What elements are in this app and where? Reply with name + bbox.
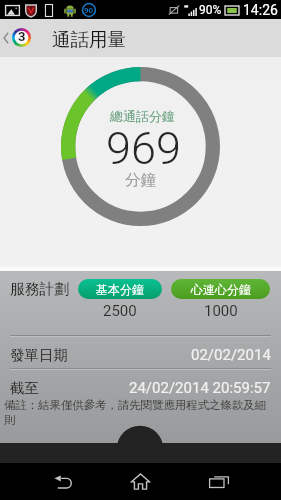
button[interactable]: 基本分鐘 — [78, 279, 162, 299]
staticText: 基本分鐘 — [96, 282, 144, 297]
staticText: 心連心分鐘 — [191, 282, 251, 297]
staticText: 截至 — [10, 379, 39, 397]
staticText: 02/02/2014 — [191, 346, 271, 364]
button[interactable]: 截至 — [0, 372, 281, 404]
staticText: 90 — [84, 6, 94, 15]
staticText: 分鐘 — [125, 170, 156, 190]
staticText: 969 — [106, 122, 181, 175]
button[interactable]: 發單日期 — [0, 339, 281, 371]
staticText: 總通話分鐘 — [110, 108, 175, 124]
button[interactable]: Recent apps — [196, 463, 241, 500]
staticText: 90% — [199, 3, 222, 17]
staticText: 服務計劃 — [10, 280, 70, 299]
button[interactable]: 心連心分鐘 — [171, 279, 270, 299]
staticText: 14:26 — [243, 2, 278, 18]
staticText: 2500 — [103, 302, 137, 319]
staticText: 備註：結果僅供參考，請先閱覽應用程式之條款及細則 — [4, 398, 266, 427]
button[interactable]: Home — [118, 463, 163, 500]
staticText: 發單日期 — [10, 346, 68, 364]
staticText: 24/02/2014 20:59:57 — [129, 379, 271, 397]
button[interactable]: Back — [41, 463, 86, 500]
button[interactable]: Back — [0, 19, 12, 57]
staticText: 通話用量 — [52, 28, 126, 51]
staticText: 3 — [18, 29, 26, 44]
staticText: 1000 — [204, 302, 238, 319]
